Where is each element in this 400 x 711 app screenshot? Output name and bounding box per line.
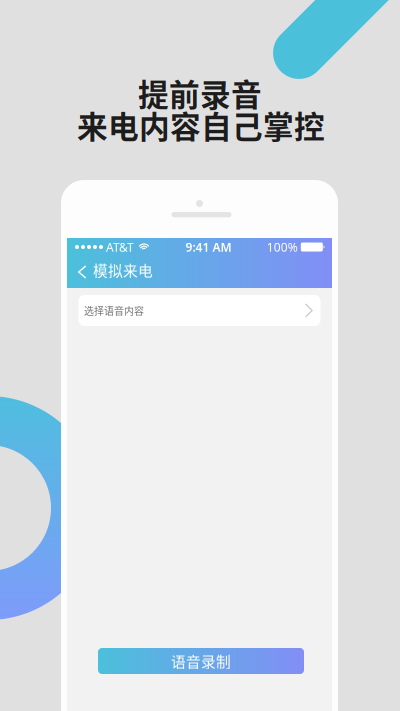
staticText: 选择语音内容 <box>84 303 144 318</box>
button[interactable]: Back <box>67 257 93 287</box>
button[interactable]: 语音录制 <box>98 648 304 674</box>
button[interactable]: 选择语音内容 <box>78 295 320 326</box>
staticText: AT&T <box>106 239 134 255</box>
staticText: 9:41 AM <box>185 239 231 255</box>
staticText: 100% <box>267 239 298 255</box>
staticText: 语音录制 <box>171 650 231 672</box>
staticText: 模拟来电 <box>93 259 153 281</box>
staticText: 提前录音 <box>138 71 262 115</box>
staticText: 来电内容自己掌控 <box>77 103 325 147</box>
